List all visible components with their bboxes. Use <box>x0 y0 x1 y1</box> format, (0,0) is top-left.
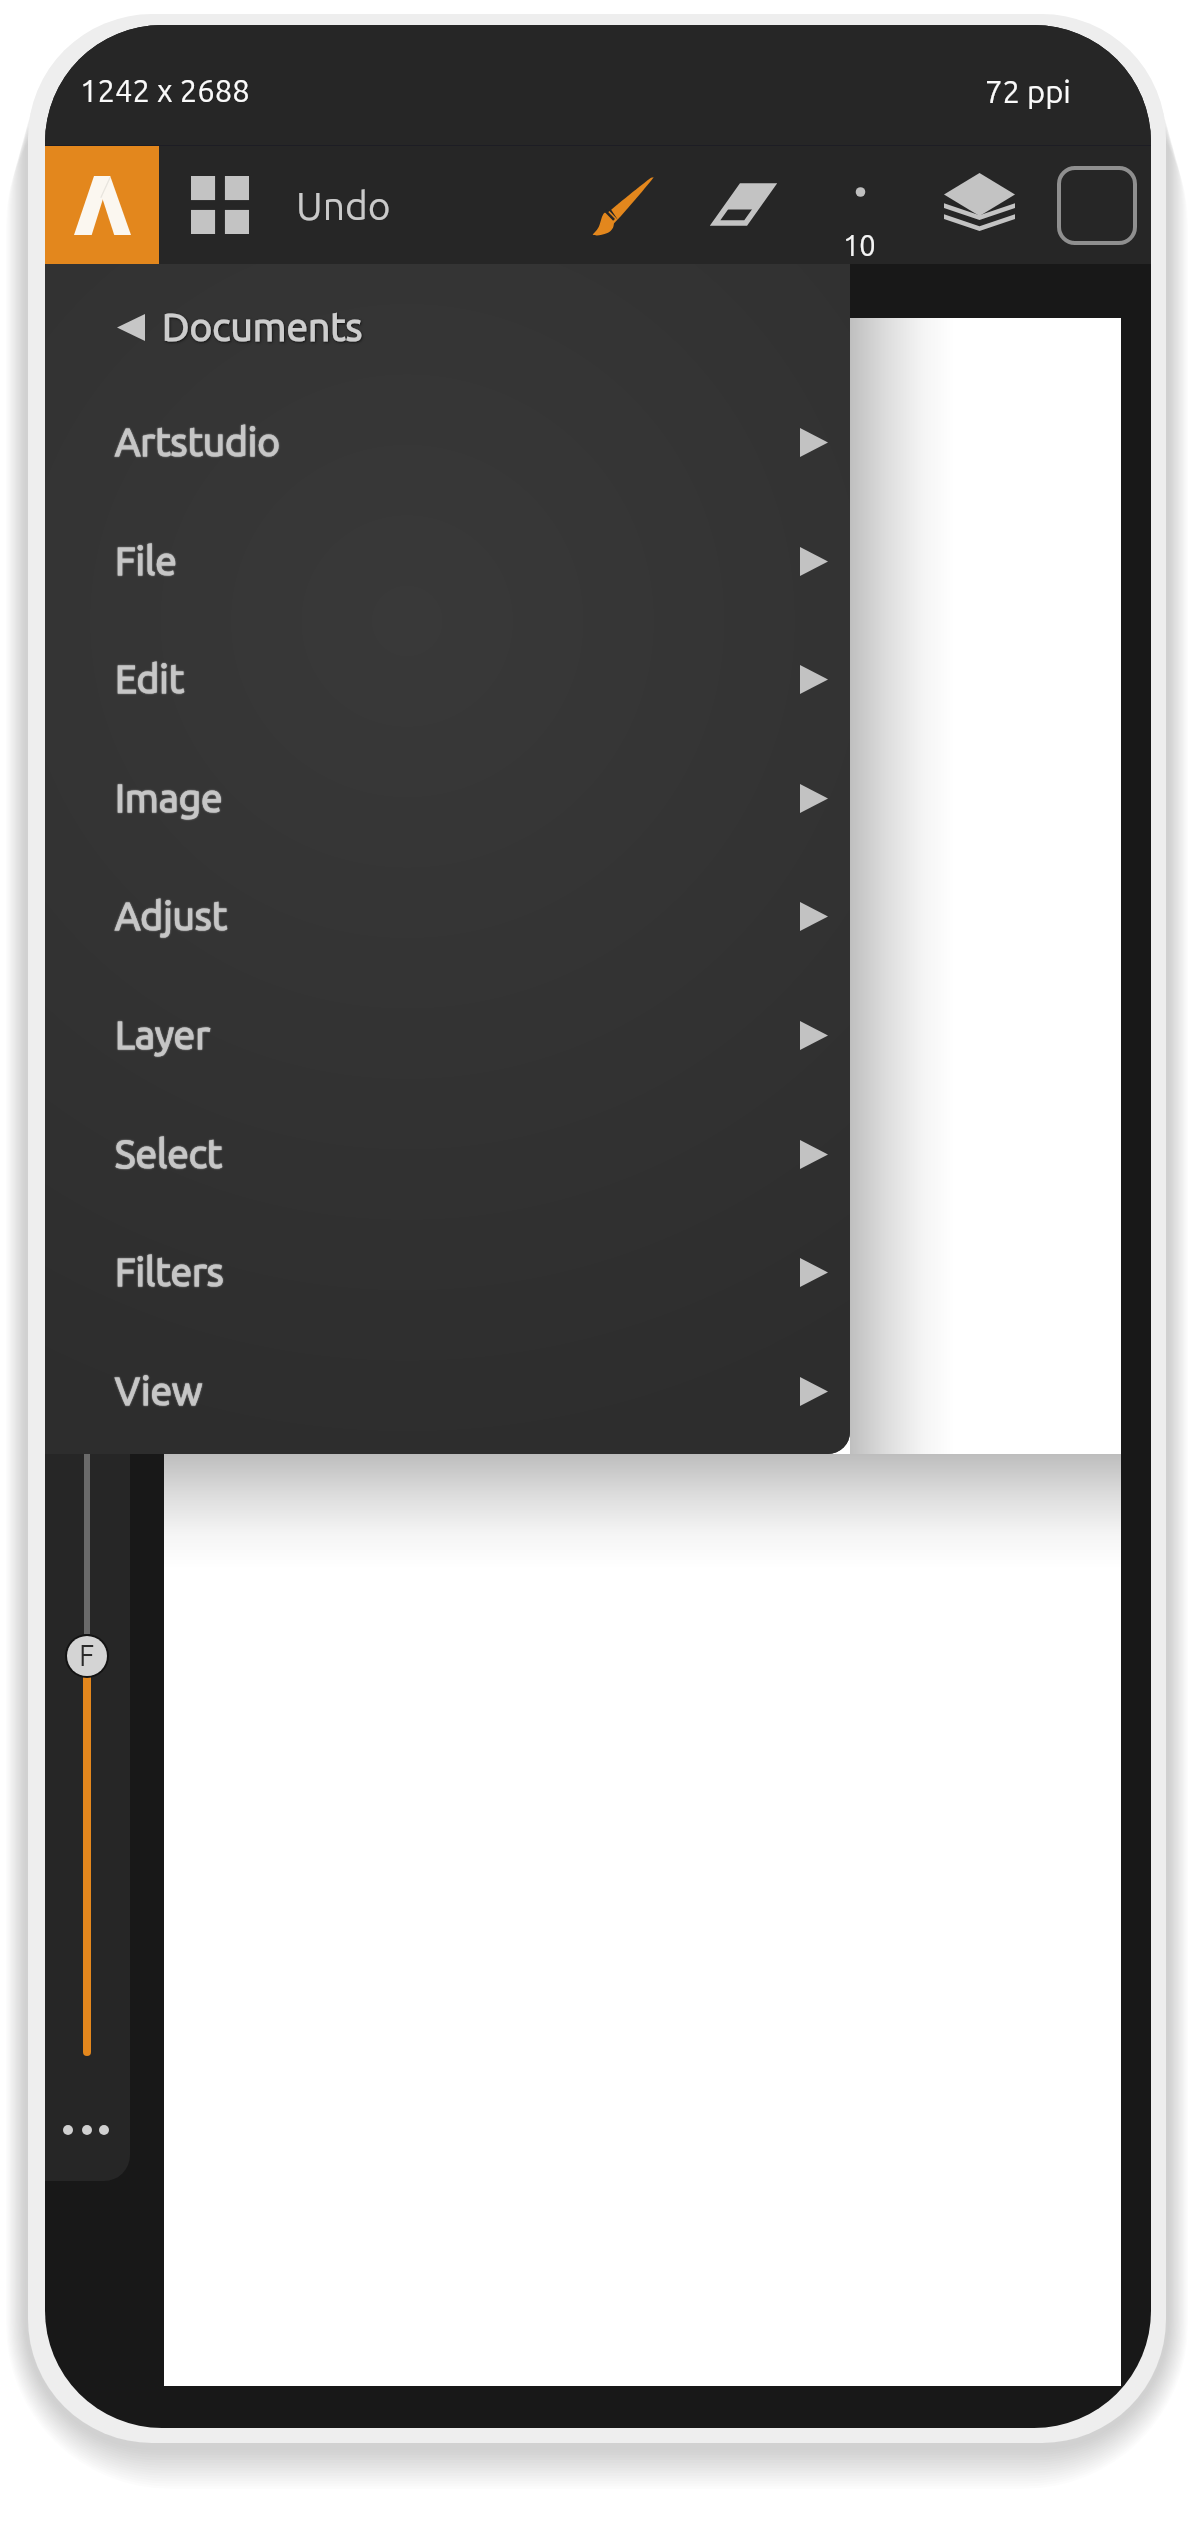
button[interactable]: Brush size <box>822 172 900 262</box>
button[interactable]: View <box>45 1332 850 1450</box>
staticText: Adjust <box>115 894 228 938</box>
button[interactable]: Edit <box>45 620 850 738</box>
button[interactable]: Layers <box>935 165 1023 247</box>
staticText: Artstudio <box>115 420 281 464</box>
staticText: Undo <box>296 184 391 228</box>
button[interactable]: Brush tool <box>582 162 668 248</box>
button[interactable]: Artstudio <box>45 383 850 501</box>
button[interactable]: File <box>45 502 850 620</box>
button[interactable]: Colour <box>1053 162 1141 249</box>
staticText: Image <box>115 776 223 820</box>
button[interactable]: Gallery <box>186 171 254 240</box>
button[interactable]: Select <box>45 1095 850 1213</box>
button[interactable]: Eraser tool <box>704 175 782 233</box>
staticText: Layer <box>115 1013 210 1057</box>
staticText: 1242 x 2688 <box>80 73 250 108</box>
button[interactable]: Image <box>45 739 850 857</box>
staticText: F <box>79 1639 95 1672</box>
button[interactable]: Artstudio menu <box>45 146 159 264</box>
button[interactable]: Undo <box>296 173 406 239</box>
staticText: Select <box>115 1132 223 1176</box>
button[interactable]: Filters <box>45 1213 850 1331</box>
button[interactable]: Layer <box>45 976 850 1094</box>
staticText: Documents <box>162 305 363 349</box>
staticText: 72 ppi <box>985 74 1071 109</box>
staticText: Filters <box>115 1250 224 1294</box>
button[interactable]: Documents <box>45 289 850 365</box>
staticText: Edit <box>115 657 185 701</box>
staticText: View <box>115 1369 203 1413</box>
button[interactable]: Adjust <box>45 857 850 975</box>
staticText: File <box>115 539 177 583</box>
button[interactable]: More options <box>56 2108 114 2152</box>
staticText: 10 <box>843 229 876 262</box>
